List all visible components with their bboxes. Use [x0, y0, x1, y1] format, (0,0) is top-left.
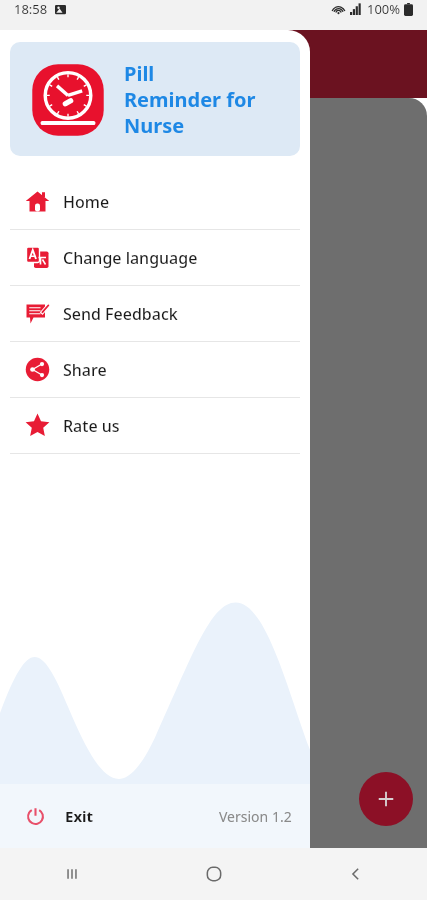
button[interactable]: Add reminder: [359, 772, 413, 826]
button[interactable]: Home: [143, 848, 285, 900]
staticText: Home: [63, 191, 110, 213]
staticText: Change language: [63, 247, 198, 269]
button[interactable]: Home: [0, 174, 310, 229]
staticText: Pill Reminder for Nurse: [124, 60, 256, 139]
button[interactable]: Share: [0, 342, 310, 397]
button[interactable]: Change language: [0, 230, 310, 285]
staticText: Exit: [65, 806, 94, 826]
staticText: Version 1.2: [219, 807, 292, 826]
button[interactable]: Exit: [0, 784, 310, 848]
button[interactable]: Pill Reminder for Nurse: [10, 42, 300, 156]
staticText: Rate us: [63, 415, 120, 437]
staticText: 18:58: [14, 0, 48, 18]
button[interactable]: Rate us: [0, 398, 310, 453]
button[interactable]: Back: [285, 848, 427, 900]
staticText: Share: [63, 359, 107, 381]
staticText: Send Feedback: [63, 303, 178, 325]
button[interactable]: Send Feedback: [0, 286, 310, 341]
staticText: 100%: [367, 0, 401, 18]
button[interactable]: Recent apps: [0, 848, 143, 900]
